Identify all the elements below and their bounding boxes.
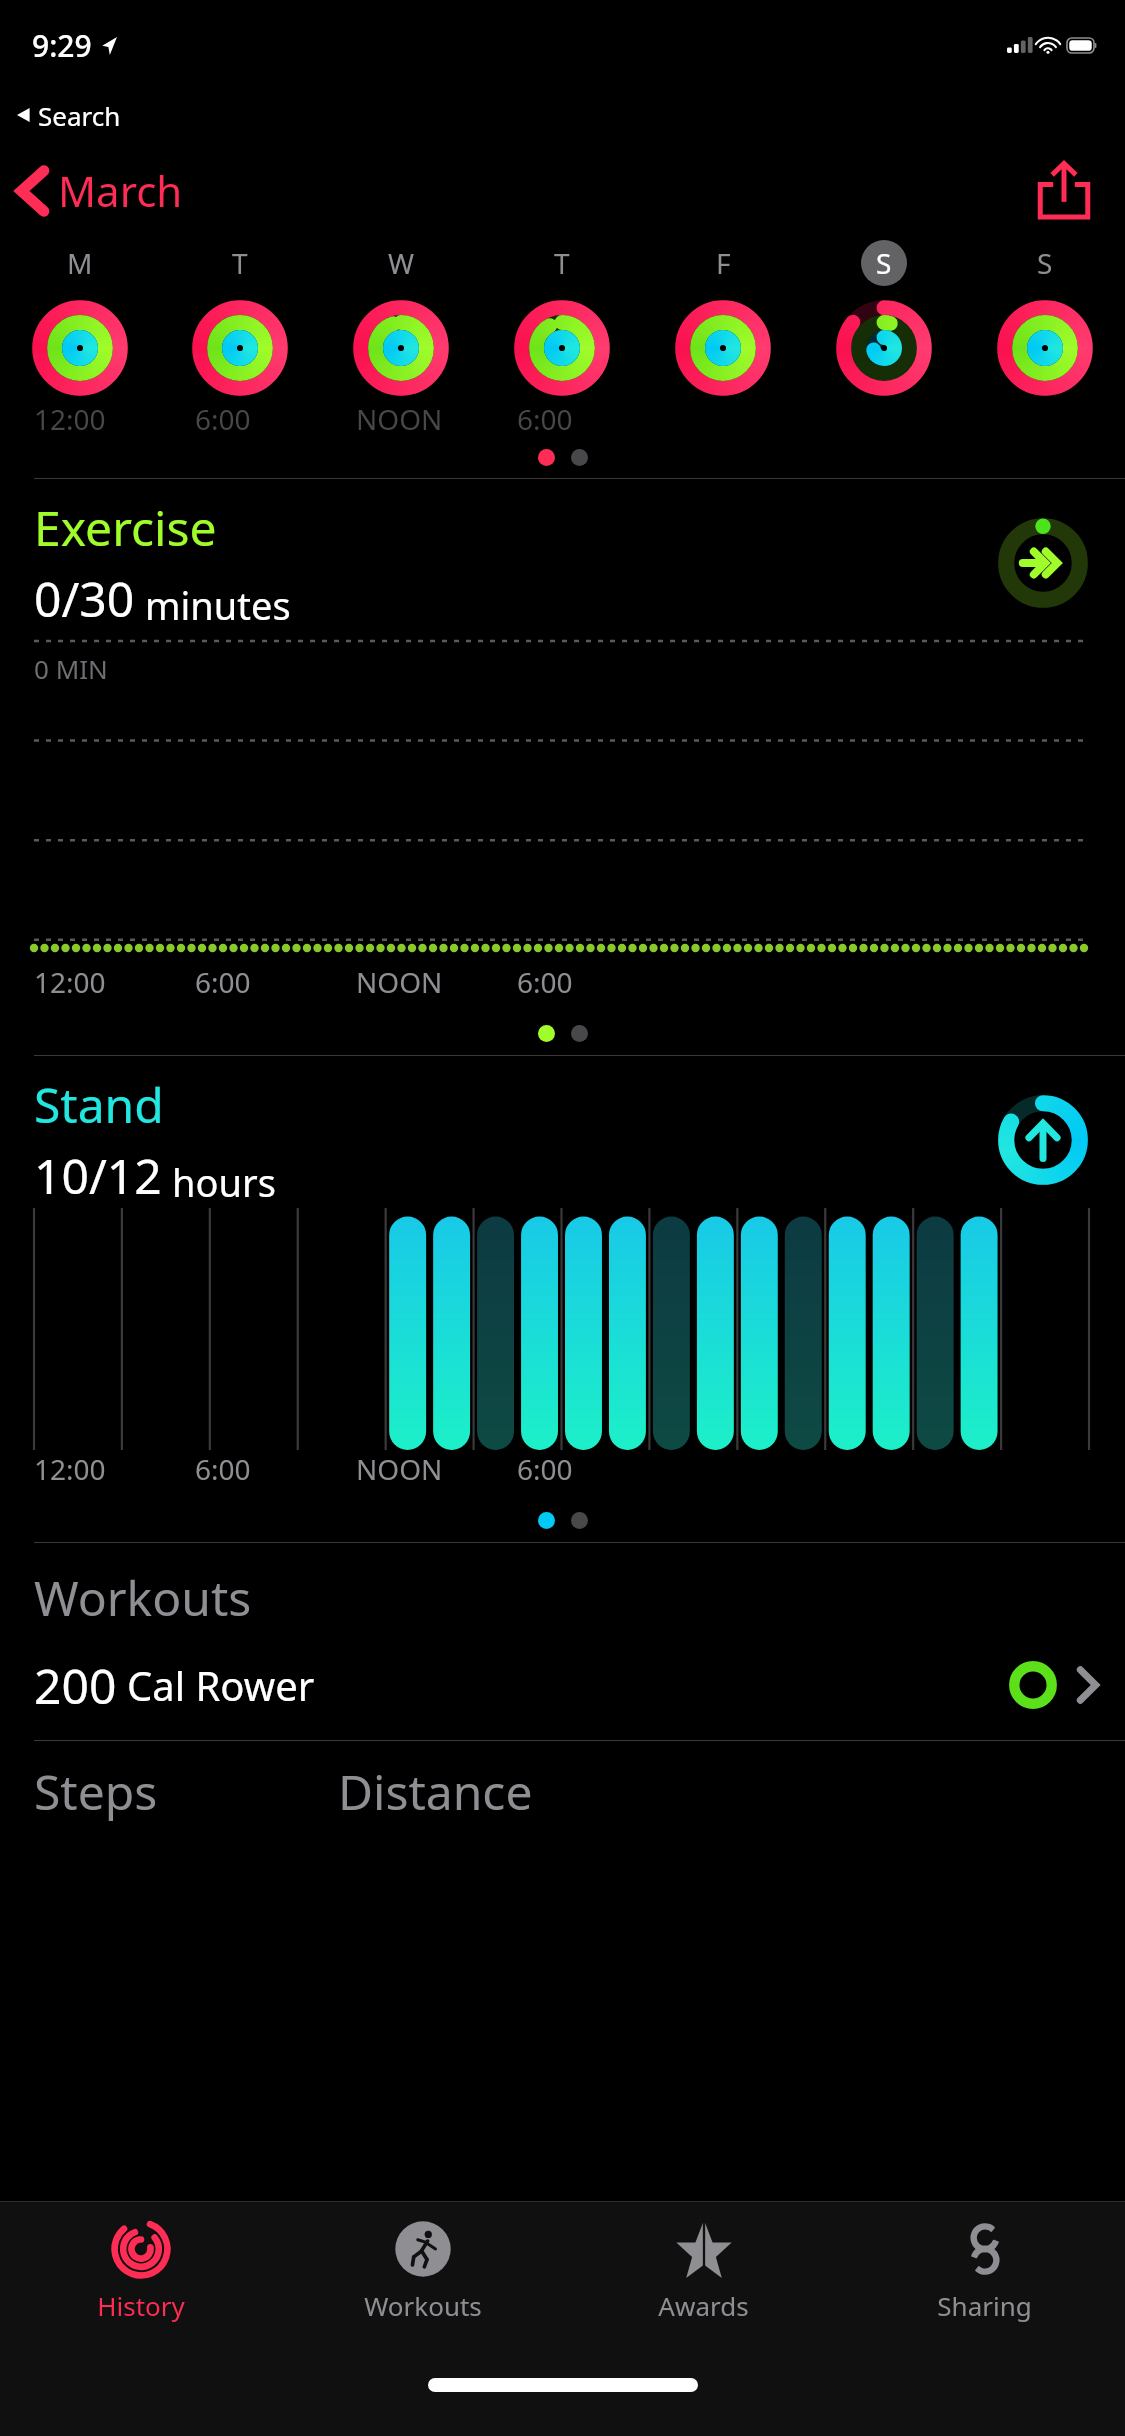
- staticText: Steps: [34, 1759, 158, 1824]
- staticText: Exercise: [34, 495, 217, 560]
- button[interactable]: 200: [0, 1630, 1125, 1740]
- staticText: 12:00: [34, 963, 106, 1001]
- staticText: 12:00: [34, 1450, 106, 1488]
- staticText: NOON: [356, 963, 443, 1001]
- staticText: T: [554, 244, 570, 282]
- staticText: Stand: [34, 1072, 164, 1137]
- staticText: Sharing: [937, 2288, 1032, 2323]
- staticText: T: [232, 244, 248, 282]
- staticText: Workouts: [364, 2288, 482, 2323]
- staticText: Distance: [338, 1759, 533, 1824]
- button[interactable]: [514, 300, 610, 396]
- staticText: 10/12: [34, 1143, 162, 1208]
- staticText: minutes: [145, 579, 291, 631]
- staticText: 6:00: [517, 1450, 573, 1488]
- button[interactable]: Exercise: [0, 479, 1125, 1056]
- button[interactable]: Search: [0, 90, 1125, 140]
- button[interactable]: Workouts: [282, 2202, 563, 2362]
- staticText: W: [388, 244, 415, 282]
- button[interactable]: Share: [1037, 163, 1091, 217]
- button[interactable]: History: [0, 2202, 282, 2362]
- staticText: 6:00: [195, 400, 251, 436]
- staticText: 6:00: [195, 963, 251, 1001]
- button[interactable]: March: [16, 162, 183, 219]
- staticText: NOON: [356, 1450, 443, 1488]
- button[interactable]: [675, 300, 771, 396]
- staticText: Workouts: [34, 1565, 252, 1630]
- button[interactable]: [836, 300, 932, 396]
- button[interactable]: [353, 300, 449, 396]
- staticText: hours: [172, 1156, 276, 1208]
- button[interactable]: [192, 300, 288, 396]
- staticText: 0 MIN: [34, 651, 108, 686]
- staticText: NOON: [356, 400, 443, 436]
- button[interactable]: Stand: [0, 1056, 1125, 1543]
- staticText: 200: [34, 1653, 117, 1718]
- staticText: F: [716, 244, 731, 282]
- staticText: 6:00: [195, 1450, 251, 1488]
- staticText: Awards: [658, 2288, 749, 2323]
- button[interactable]: Awards: [563, 2202, 844, 2362]
- button[interactable]: [997, 300, 1093, 396]
- staticText: Search: [38, 98, 121, 133]
- staticText: 0/30: [34, 566, 135, 631]
- button[interactable]: Sharing: [844, 2202, 1125, 2362]
- button[interactable]: [32, 300, 128, 396]
- staticText: 9:29: [32, 25, 92, 66]
- staticText: 6:00: [517, 400, 573, 436]
- staticText: History: [97, 2288, 185, 2323]
- staticText: 12:00: [34, 400, 106, 436]
- staticText: 6:00: [517, 963, 573, 1001]
- staticText: S: [876, 244, 892, 282]
- staticText: March: [58, 162, 183, 219]
- staticText: M: [67, 244, 93, 282]
- staticText: S: [1037, 244, 1053, 282]
- staticText: Cal Rower: [127, 1658, 315, 1712]
